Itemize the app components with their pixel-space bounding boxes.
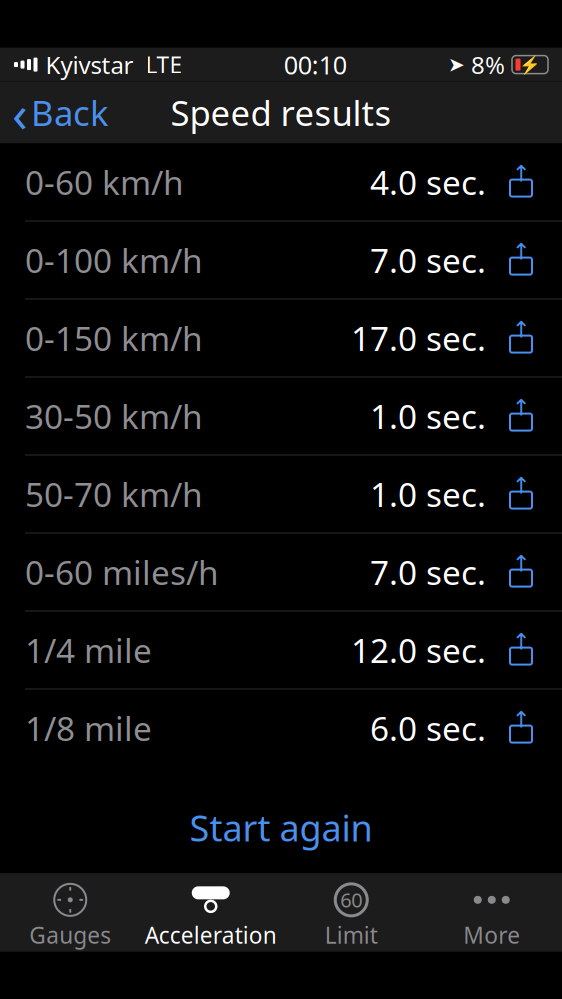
staticText: Limit	[325, 920, 378, 950]
staticText: More	[463, 920, 520, 950]
staticText: ⚡	[519, 55, 541, 74]
staticText: ‹	[12, 79, 28, 146]
button[interactable]: 0-100 km/h	[0, 222, 562, 299]
button[interactable]: 0-60 km/h	[0, 144, 562, 221]
button[interactable]: ‹	[0, 82, 121, 144]
staticText: 30-50 km/h	[25, 394, 203, 438]
button[interactable]: Gauges	[0, 873, 140, 951]
staticText: 0-150 km/h	[25, 316, 203, 360]
button[interactable]: 0-60 miles/h	[0, 534, 562, 611]
staticText: 60	[340, 887, 362, 913]
staticText: 50-70 km/h	[25, 472, 203, 516]
staticText: 6.0 sec.	[370, 706, 486, 750]
staticText: 0-60 km/h	[25, 160, 184, 204]
staticText: Speed results	[170, 90, 391, 136]
staticText: 12.0 sec.	[351, 628, 486, 672]
staticText: 1/4 mile	[25, 628, 152, 672]
button[interactable]: 50-70 km/h	[0, 456, 562, 533]
staticText: ↑	[511, 161, 530, 186]
staticText: Gauges	[29, 920, 111, 950]
button[interactable]: Start again	[0, 790, 562, 865]
staticText: ↑	[511, 239, 530, 264]
staticText: Kyivstar	[45, 49, 133, 81]
staticText: 00:10	[284, 48, 347, 81]
staticText: 7.0 sec.	[370, 550, 486, 594]
staticText: ↑	[511, 395, 530, 420]
button[interactable]: 60	[281, 873, 421, 951]
staticText: ↑	[511, 317, 530, 342]
staticText: ➤	[448, 53, 465, 76]
staticText: Acceleration	[145, 920, 277, 950]
staticText: 1.0 sec.	[370, 472, 486, 516]
staticText: 17.0 sec.	[351, 316, 486, 360]
button[interactable]: 30-50 km/h	[0, 378, 562, 455]
button[interactable]: 0-150 km/h	[0, 300, 562, 377]
staticText: 0-100 km/h	[25, 238, 203, 282]
staticText: 8%	[471, 49, 505, 81]
staticText: 4.0 sec.	[370, 160, 486, 204]
button[interactable]: More	[421, 873, 562, 951]
staticText: Back	[31, 90, 109, 136]
staticText: 1/8 mile	[25, 706, 152, 750]
button[interactable]: 1/8 mile	[0, 690, 562, 767]
staticText: 0-60 miles/h	[25, 550, 219, 594]
button[interactable]: 1/4 mile	[0, 612, 562, 689]
staticText: ↑	[511, 629, 530, 654]
staticText: 7.0 sec.	[370, 238, 486, 282]
button[interactable]: Acceleration	[140, 873, 281, 951]
staticText: LTE	[145, 49, 182, 80]
staticText: ↑	[511, 473, 530, 498]
staticText: ↑	[511, 551, 530, 576]
staticText: ↑	[511, 707, 530, 732]
staticText: Start again	[189, 804, 372, 851]
staticText: 1.0 sec.	[370, 394, 486, 438]
